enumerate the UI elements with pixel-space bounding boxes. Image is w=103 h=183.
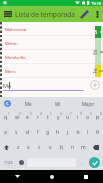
button[interactable]: Edit list [77, 6, 91, 22]
staticText: m [81, 144, 86, 151]
button[interactable]: u [63, 110, 73, 125]
button[interactable]: m [78, 140, 89, 155]
staticText: Feb [92, 68, 103, 74]
button[interactable]: Mejor [73, 97, 103, 110]
button[interactable]: f [33, 125, 43, 140]
staticText: Me [3, 82, 12, 89]
button[interactable]: x [23, 140, 34, 155]
button[interactable]: v [45, 140, 56, 155]
staticText: Mahonesa [5, 26, 27, 32]
staticText: Ene [92, 49, 103, 55]
staticText: Melón [5, 40, 18, 46]
button[interactable]: w [11, 110, 22, 125]
staticText: Dic [92, 29, 103, 35]
staticText: 9 [90, 112, 92, 116]
staticText: s [15, 129, 18, 136]
button[interactable]: h [53, 125, 63, 140]
button[interactable]: Mero [0, 64, 103, 78]
button[interactable]: Mi [43, 97, 73, 110]
staticText: 0 [100, 112, 102, 116]
staticText: 19:18 [91, 1, 102, 6]
staticText: k [77, 129, 80, 136]
staticText: ñ [96, 129, 100, 136]
staticText: Mi [55, 101, 61, 107]
button[interactable]: Feb [95, 65, 101, 77]
staticText: r [37, 114, 40, 121]
button[interactable]: o [83, 110, 93, 125]
staticText: . [81, 159, 83, 166]
button[interactable]: ?123 [0, 155, 16, 170]
button[interactable]: Membrillo [0, 50, 103, 64]
button[interactable]: Add item [89, 79, 101, 91]
staticText: Me [25, 101, 32, 107]
staticText: u [66, 114, 70, 121]
staticText: g [46, 129, 50, 136]
staticText: 7 [70, 112, 72, 116]
staticText: x [27, 144, 30, 151]
button[interactable]: Home [42, 170, 62, 183]
staticText: Lista de temporada [15, 10, 75, 19]
button[interactable]: Open navigation drawer [0, 6, 15, 22]
staticText: o [86, 114, 90, 121]
staticText: j [67, 129, 69, 136]
button[interactable]: t [43, 110, 53, 125]
staticText: 8 [80, 112, 82, 116]
button[interactable]: l [83, 125, 93, 140]
button[interactable]: Me [14, 97, 43, 110]
staticText: f [37, 129, 39, 136]
staticText: 6 [60, 112, 62, 116]
button[interactable]: j [63, 125, 73, 140]
staticText: e [26, 114, 29, 121]
button[interactable]: s [11, 125, 22, 140]
button[interactable]: Back [7, 170, 27, 183]
button[interactable]: q [0, 110, 11, 125]
button[interactable]: Ene [95, 38, 101, 65]
button[interactable]: p [93, 110, 103, 125]
button[interactable]: Shift [0, 140, 13, 155]
button[interactable]: a [0, 125, 11, 140]
button[interactable]: e [22, 110, 33, 125]
staticText: b [60, 144, 64, 151]
staticText: 4 [40, 112, 42, 116]
button[interactable]: g [43, 125, 53, 140]
button[interactable]: z [13, 140, 23, 155]
button[interactable]: i [73, 110, 83, 125]
button[interactable]: b [56, 140, 67, 155]
button[interactable]: d [22, 125, 33, 140]
button[interactable]: n [67, 140, 78, 155]
button[interactable]: c [34, 140, 45, 155]
button[interactable]: Dic [95, 26, 101, 38]
button[interactable]: Melón [0, 36, 103, 50]
staticText: Mero [5, 68, 16, 74]
button[interactable]: Emoji [16, 155, 26, 170]
staticText: Mejor [82, 101, 95, 107]
staticText: ?123 [4, 160, 13, 165]
button[interactable]: Google search [0, 97, 14, 110]
button[interactable]: Recent apps [76, 170, 96, 183]
staticText: y [57, 114, 60, 121]
staticText: 5 [50, 112, 52, 116]
staticText: n [71, 144, 75, 151]
staticText: 1 [8, 112, 10, 116]
button[interactable]: More options [91, 6, 103, 22]
button[interactable]: ñ [93, 125, 103, 140]
button[interactable]: y [53, 110, 63, 125]
button[interactable]: Mahonesa [0, 22, 103, 36]
staticText: a [4, 129, 7, 136]
staticText: l [87, 129, 89, 136]
staticText: p [96, 114, 100, 121]
button[interactable]: r [33, 110, 43, 125]
staticText: i [77, 114, 79, 121]
staticText: d [26, 129, 30, 136]
staticText: Membrillo [5, 54, 26, 60]
staticText: h [56, 129, 60, 136]
button[interactable]: k [73, 125, 83, 140]
staticText: c [38, 144, 41, 151]
button[interactable]: . [77, 155, 86, 170]
button[interactable]: Backspace [89, 140, 103, 155]
staticText: 3 [30, 112, 32, 116]
staticText: t [47, 114, 49, 121]
button[interactable]: Enter [86, 155, 103, 170]
staticText: w [15, 114, 19, 121]
